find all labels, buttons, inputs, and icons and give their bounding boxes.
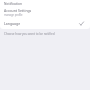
button[interactable]: Notification [0, 0, 90, 7]
staticText: Choose how you want to be notified [4, 32, 55, 36]
staticText: Notification [4, 2, 22, 6]
button[interactable]: Selected [78, 20, 85, 27]
button[interactable]: Language [0, 18, 90, 29]
staticText: Account Settings [4, 8, 32, 13]
staticText: manage profile [4, 13, 23, 17]
button[interactable]: Account Settings [0, 7, 90, 18]
staticText: Language [4, 21, 21, 26]
